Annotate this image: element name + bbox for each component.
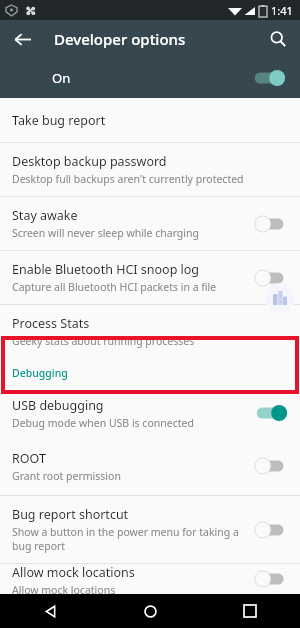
button[interactable]: Process Stats [0, 305, 300, 357]
staticText: Stay awake [12, 207, 78, 224]
button[interactable]: Allow mock locations [0, 564, 300, 594]
staticText: 1:41 [271, 3, 293, 18]
button[interactable]: Stay awake [0, 197, 300, 250]
staticText: Bug report shortcut [12, 506, 129, 523]
staticText: Process Stats [12, 315, 90, 332]
staticText: Grant root permission [12, 469, 121, 483]
staticText: On [52, 69, 71, 87]
button[interactable]: Home [100, 594, 200, 628]
button[interactable]: Search [262, 23, 294, 55]
staticText: Show a button in the power menu for taki… [12, 525, 244, 553]
staticText: Debugging [12, 366, 68, 380]
button[interactable]: Recents [200, 594, 300, 628]
staticText: Allow mock locations [12, 583, 116, 594]
button[interactable]: Enable Bluetooth HCI snoop log [0, 251, 300, 304]
staticText: Allow mock locations [12, 564, 135, 581]
staticText: Desktop backup password [12, 153, 167, 170]
staticText: Capture all Bluetooth HCI packets in a f… [12, 280, 217, 294]
button[interactable]: USB debugging [0, 389, 300, 437]
staticText: Geeky stats about running processes [12, 334, 195, 348]
button[interactable]: Back [0, 594, 100, 628]
button[interactable]: On [0, 58, 300, 98]
button[interactable]: Bug report shortcut [0, 496, 300, 563]
staticText: Take bug report [12, 112, 106, 129]
button[interactable]: ROOT [0, 437, 300, 495]
button[interactable]: Back [6, 23, 38, 55]
staticText: USB debugging [12, 397, 104, 414]
staticText: Screen will never sleep while charging [12, 226, 199, 240]
staticText: ROOT [12, 450, 46, 467]
button[interactable]: Take bug report [0, 98, 300, 142]
staticText: Enable Bluetooth HCI snoop log [12, 261, 200, 278]
button[interactable]: Desktop backup password [0, 143, 300, 196]
staticText: Developer options [54, 29, 186, 49]
staticText: Debug mode when USB is connected [12, 416, 194, 430]
staticText: Desktop full backups aren't currently pr… [12, 172, 244, 186]
